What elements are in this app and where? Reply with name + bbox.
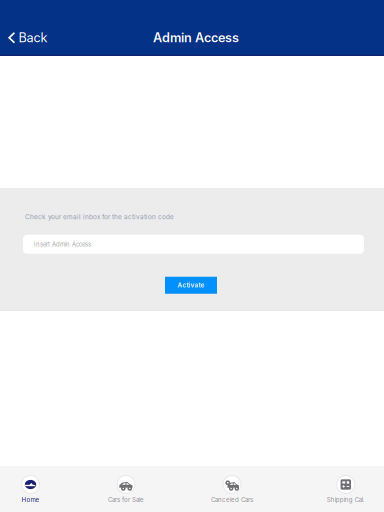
staticText: Insert Admin Access [34, 241, 91, 248]
staticText: Back [18, 30, 47, 45]
staticText: Home [21, 496, 39, 503]
staticText: Shipping Cal. [327, 496, 365, 503]
staticText: Cars for Sale [108, 496, 144, 503]
button[interactable]: Canceled Cars [211, 466, 253, 512]
button[interactable]: Cars for Sale [106, 466, 146, 512]
staticText: Canceled Cars [211, 496, 253, 503]
staticText: Check your email inbox for the activatio… [25, 213, 174, 221]
button[interactable]: Shipping Cal. [326, 466, 366, 512]
button[interactable]: Home [10, 466, 50, 512]
button[interactable]: Activate [165, 277, 217, 294]
staticText: Admin Access [153, 30, 239, 45]
staticText: Activate [177, 281, 204, 289]
button[interactable]: Back [0, 24, 57, 51]
